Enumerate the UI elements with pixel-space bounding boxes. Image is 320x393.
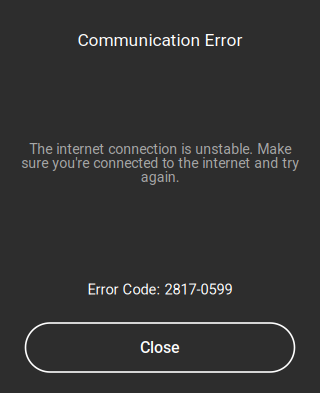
button[interactable]: Close — [25, 323, 294, 372]
staticText: The internet connection is unstable. Mak… — [21, 142, 299, 184]
staticText: Communication Error — [77, 30, 242, 50]
staticText: Error Code: 2817-0599 — [87, 281, 232, 298]
staticText: Close — [140, 338, 180, 357]
